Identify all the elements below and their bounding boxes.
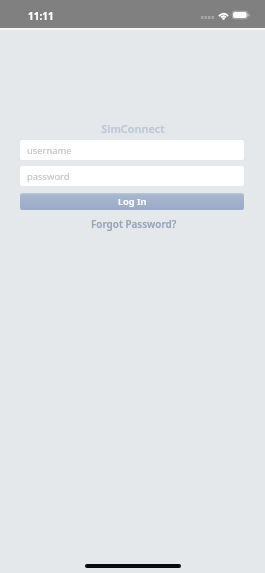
button[interactable]: Log In	[20, 193, 244, 210]
other: Battery full	[232, 11, 250, 19]
staticText: 11:11	[28, 9, 54, 23]
staticText: username	[27, 144, 72, 157]
staticText: Forgot Password?	[91, 217, 177, 230]
button[interactable]: password	[20, 166, 244, 186]
staticText: password	[27, 170, 70, 183]
button[interactable]: Forgot Password?	[87, 216, 181, 231]
other: Cellular signal	[201, 16, 214, 19]
button[interactable]: username	[20, 140, 244, 160]
other: Wi-Fi	[218, 10, 229, 20]
staticText: Log In	[118, 195, 147, 208]
staticText: SimConnect	[21, 121, 245, 136]
